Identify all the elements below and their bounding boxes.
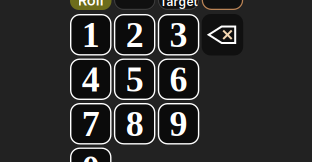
staticText: 8 <box>126 104 144 144</box>
staticText: Roll <box>78 0 104 9</box>
staticText: Target <box>160 0 198 9</box>
button[interactable]: Modifier <box>202 0 243 10</box>
staticText: 9 <box>170 104 188 144</box>
button[interactable]: Roll <box>70 0 111 10</box>
button[interactable]: 6 <box>158 58 199 100</box>
staticText: 4 <box>82 59 100 99</box>
button[interactable]: 2 <box>114 14 155 55</box>
staticText: 0 <box>82 148 100 162</box>
button[interactable]: Target <box>158 0 199 10</box>
staticText: 7 <box>82 104 100 144</box>
button[interactable]: 9 <box>158 103 199 144</box>
button[interactable]: Dice count <box>114 0 155 10</box>
button[interactable]: 5 <box>114 58 155 100</box>
staticText: 1 <box>82 15 100 55</box>
button[interactable]: 7 <box>70 103 111 144</box>
button[interactable]: Delete <box>202 14 243 55</box>
button[interactable]: 8 <box>114 103 155 144</box>
button[interactable]: 1 <box>70 14 111 55</box>
button[interactable]: 0 <box>70 147 111 162</box>
staticText: 5 <box>126 59 144 99</box>
staticText: 3 <box>170 15 188 55</box>
button[interactable]: 4 <box>70 58 111 100</box>
staticText: 2 <box>126 15 144 55</box>
staticText: 6 <box>170 59 188 99</box>
button[interactable]: 3 <box>158 14 199 55</box>
